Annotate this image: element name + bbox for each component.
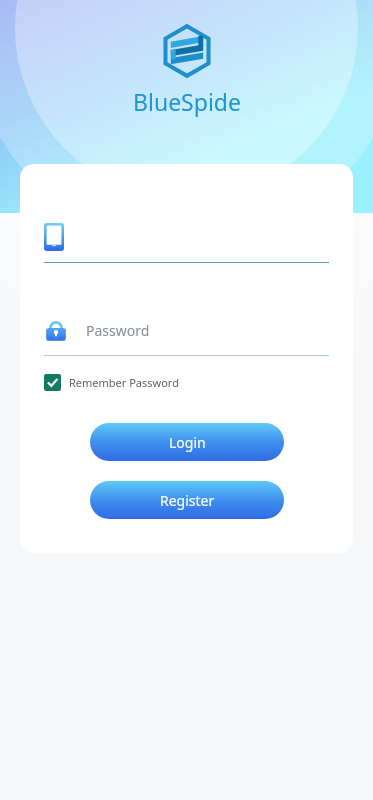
button[interactable]: Remember Password	[44, 369, 179, 395]
button[interactable]: Register	[90, 481, 284, 519]
other: Phone number	[44, 223, 64, 251]
button[interactable]: Phone number	[44, 218, 329, 256]
staticText: Register	[160, 491, 215, 510]
staticText: Remember Password	[69, 375, 179, 390]
staticText: BlueSpide	[133, 86, 241, 117]
staticText: Password	[86, 321, 150, 340]
other: BlueSpide logo	[160, 24, 214, 78]
button[interactable]: Password	[44, 313, 329, 347]
other: Password	[44, 318, 68, 342]
staticText: Login	[169, 433, 206, 452]
button[interactable]: Login	[90, 423, 284, 461]
